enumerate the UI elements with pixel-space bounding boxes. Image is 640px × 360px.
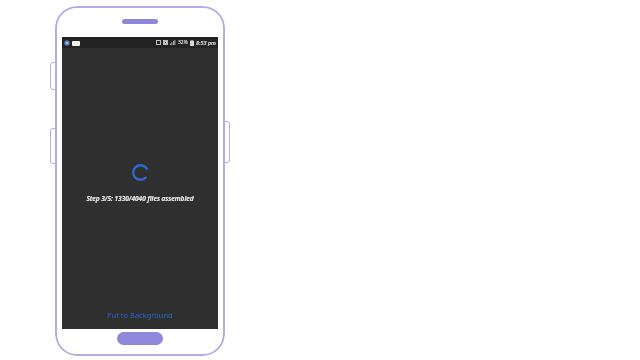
staticText: Put to Background xyxy=(107,310,173,320)
button[interactable]: Volume down xyxy=(50,128,57,164)
button[interactable]: Power xyxy=(223,121,230,163)
staticText: 8:53 pm xyxy=(196,39,216,46)
staticText: 32% xyxy=(178,39,188,46)
staticText: Step 3/5: 1330/4040 files assembled xyxy=(86,194,194,203)
button[interactable]: Put to Background xyxy=(62,301,218,329)
button[interactable]: Home xyxy=(117,332,163,345)
button[interactable]: Volume up xyxy=(50,62,57,90)
